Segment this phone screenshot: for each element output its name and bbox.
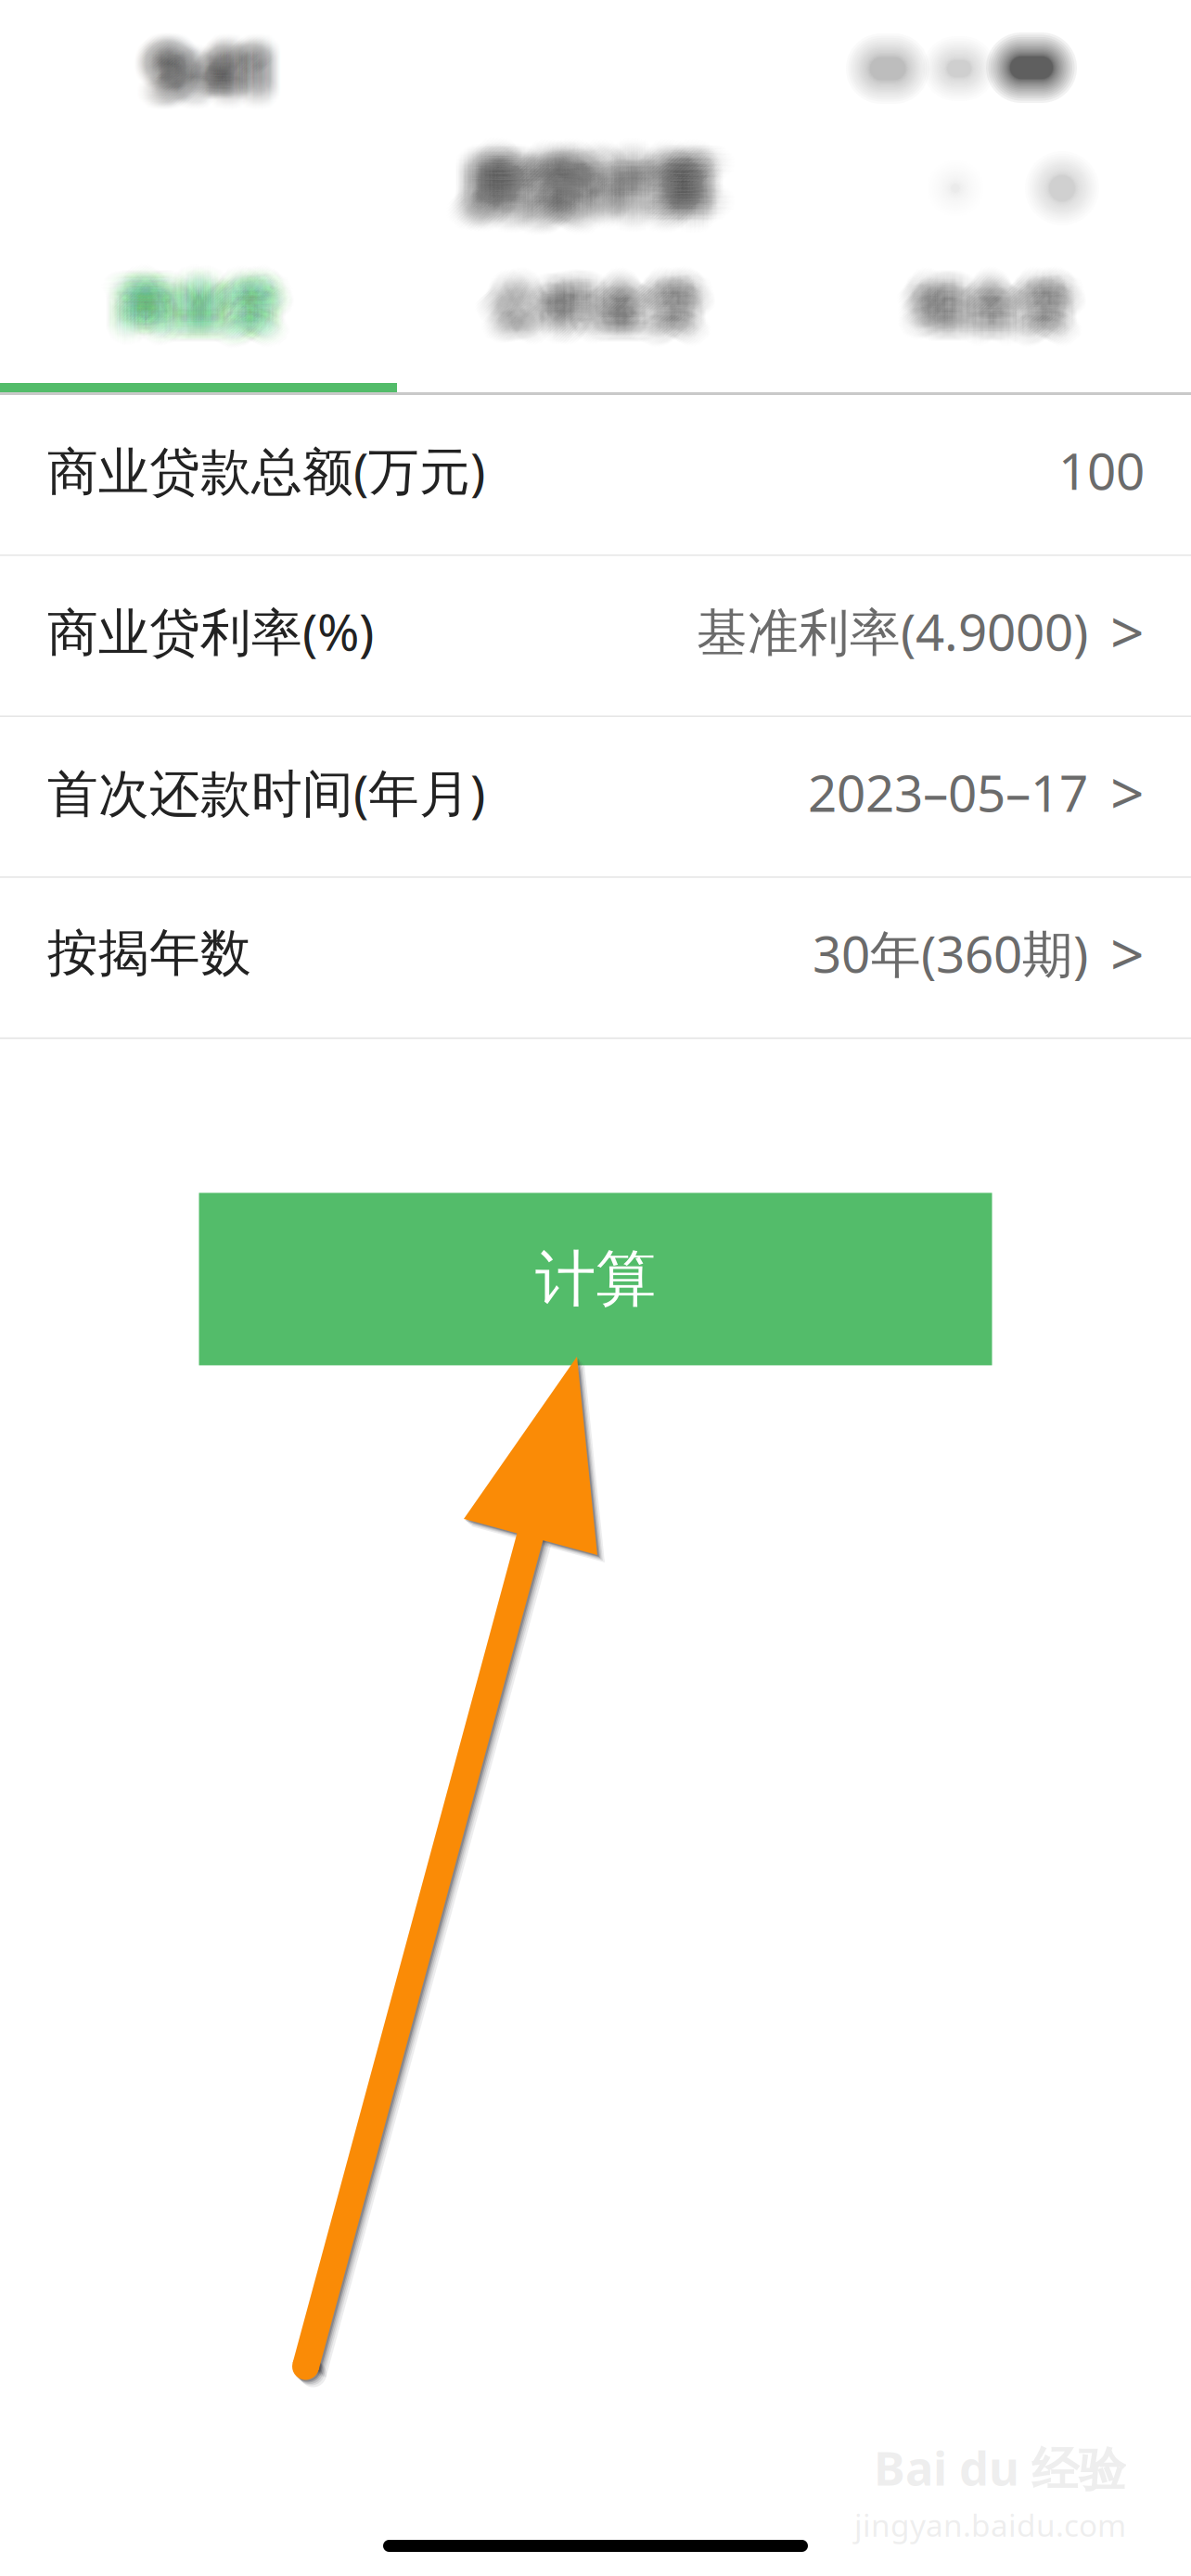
staticText: 组合贷: [926, 260, 1082, 324]
staticText: 9:41: [155, 31, 278, 113]
staticText: 房贷计算: [447, 136, 696, 212]
staticText: 房贷计算: [470, 142, 719, 218]
staticText: 公积金贷: [505, 285, 713, 349]
staticText: 房贷计算: [493, 137, 741, 213]
button[interactable]: More: [927, 160, 984, 217]
staticText: 9:41: [160, 41, 282, 123]
staticText: 房贷计算: [469, 166, 718, 242]
staticText: 商业贷: [123, 287, 279, 351]
staticText: 9:41: [167, 43, 289, 125]
staticText: 组合贷: [901, 260, 1057, 324]
staticText: 组合贷: [899, 271, 1055, 335]
staticText: 9:41: [170, 34, 293, 116]
staticText: 公积金贷: [476, 289, 684, 353]
staticText: 商业贷: [110, 266, 266, 330]
staticText: 公积金贷: [473, 283, 680, 347]
staticText: 房贷计算: [482, 157, 731, 233]
staticText: 房贷计算: [445, 138, 694, 214]
staticText: 9:41: [173, 43, 296, 125]
staticText: 9:41: [154, 34, 277, 116]
staticText: 公积金贷: [512, 270, 720, 334]
staticText: 房贷计算: [484, 135, 733, 211]
staticText: 商业贷: [127, 292, 283, 356]
staticText: 9:41: [143, 39, 265, 121]
staticText: 房贷计算: [452, 165, 701, 241]
staticText: 组合贷: [911, 280, 1067, 344]
staticText: 9:41: [163, 12, 285, 94]
staticText: 公积金贷: [473, 256, 680, 320]
staticText: 房贷计算: [443, 161, 691, 237]
staticText: 公积金贷: [502, 267, 710, 331]
staticText: 公积金贷: [516, 257, 724, 321]
staticText: 房贷计算: [477, 155, 726, 231]
staticText: 组合贷: [929, 290, 1085, 354]
staticText: 商业贷: [130, 268, 286, 332]
staticText: 房贷计算: [492, 152, 740, 228]
staticText: 公积金贷: [499, 276, 707, 340]
staticText: 房贷计算: [464, 154, 713, 230]
staticText: 公积金贷: [499, 282, 707, 346]
staticText: 房贷计算: [475, 161, 724, 237]
staticText: 公积金贷: [498, 271, 706, 335]
staticText: 商业贷: [110, 290, 266, 354]
staticText: 商业贷: [131, 258, 287, 322]
staticText: 房贷计算: [470, 165, 719, 241]
staticText: 组合贷: [926, 281, 1082, 345]
staticText: 公积金贷: [500, 260, 708, 324]
staticText: 房贷计算: [484, 132, 733, 208]
staticText: 9:41: [161, 46, 283, 128]
staticText: 9:41: [156, 32, 279, 115]
staticText: 房贷计算: [473, 163, 721, 239]
staticText: 房贷计算: [469, 156, 718, 232]
staticText: 组合贷: [905, 265, 1061, 329]
staticText: 商业贷: [120, 284, 275, 348]
staticText: 商业贷: [141, 279, 297, 343]
staticText: 公积金贷: [506, 284, 714, 348]
staticText: 商业贷: [129, 293, 285, 357]
button[interactable]: 商业贷利率(%): [0, 556, 1191, 717]
staticText: 9:41: [176, 29, 298, 112]
staticText: 房贷计算: [494, 140, 743, 216]
staticText: 商业贷: [118, 264, 274, 328]
staticText: 商业贷: [116, 272, 272, 336]
staticText: 商业贷: [139, 281, 294, 345]
staticText: 商业贷: [99, 270, 255, 334]
staticText: 商业贷: [136, 277, 292, 341]
staticText: 公积金贷: [476, 286, 684, 350]
staticText: 组合贷: [920, 260, 1076, 324]
staticText: 房贷计算: [447, 153, 696, 229]
staticText: 组合贷: [895, 283, 1051, 347]
button[interactable]: 计算: [199, 1193, 992, 1365]
button[interactable]: 商业贷: [0, 0, 397, 392]
staticText: 商业贷: [105, 265, 261, 329]
staticText: 商业贷: [141, 276, 297, 340]
staticText: 公积金贷: [503, 275, 711, 339]
staticText: 公积金贷: [480, 288, 688, 352]
staticText: 商业贷: [109, 276, 265, 340]
staticText: 组合贷: [914, 263, 1069, 327]
staticText: 房贷计算: [462, 153, 710, 229]
staticText: 9:41: [141, 18, 263, 100]
staticText: 组合贷: [901, 275, 1057, 339]
staticText: 房贷计算: [462, 146, 710, 222]
staticText: 商业贷: [122, 267, 277, 331]
staticText: 商业贷: [134, 285, 290, 349]
staticText: 商业贷: [117, 256, 273, 320]
staticText: 公积金贷: [481, 275, 689, 339]
button[interactable]: 组合贷: [794, 0, 1191, 392]
staticText: 9:41: [176, 12, 298, 94]
staticText: 9:41: [160, 21, 282, 103]
button[interactable]: 公积金贷: [397, 0, 794, 392]
staticText: 房贷计算: [476, 130, 725, 205]
staticText: 商业贷: [110, 278, 266, 342]
staticText: 组合贷: [929, 272, 1085, 336]
staticText: 公积金贷: [477, 270, 685, 334]
button[interactable]: 首次还款时间(年月): [0, 717, 1191, 878]
staticText: 9:41: [131, 47, 254, 129]
button[interactable]: 按揭年数: [0, 878, 1191, 1039]
staticText: 公积金贷: [492, 268, 699, 332]
staticText: 商业贷: [128, 264, 284, 328]
button[interactable]: 商业贷款总额(万元): [0, 395, 1191, 556]
staticText: 9:41: [132, 23, 255, 105]
button[interactable]: Menu: [1025, 151, 1099, 225]
